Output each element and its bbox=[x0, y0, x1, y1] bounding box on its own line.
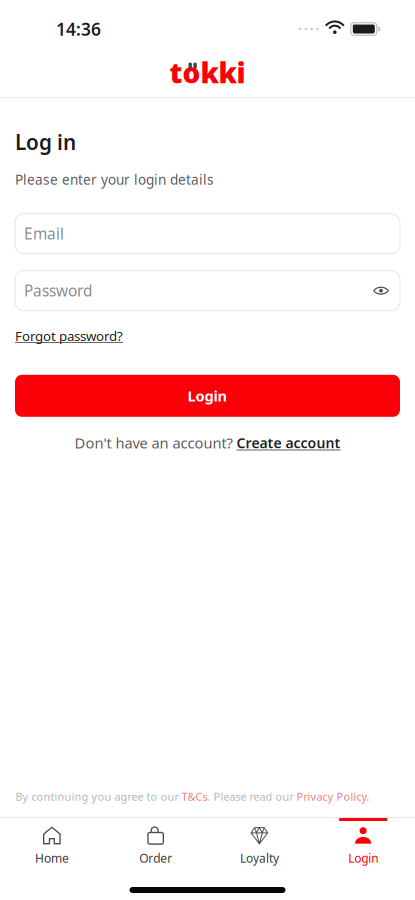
staticText: Forgot password? bbox=[15, 327, 123, 345]
staticText: Please enter your login details bbox=[15, 170, 214, 189]
button[interactable]: Order bbox=[104, 818, 208, 872]
button[interactable]: Show password bbox=[370, 280, 392, 302]
staticText: Home bbox=[35, 850, 69, 866]
staticText: Login bbox=[348, 850, 378, 866]
button[interactable]: Password bbox=[15, 271, 400, 311]
button[interactable]: Create account bbox=[236, 433, 340, 452]
staticText: By continuing you agree to our bbox=[15, 789, 181, 804]
button[interactable]: Login bbox=[15, 375, 400, 417]
staticText: Email bbox=[24, 223, 64, 244]
button[interactable]: Home bbox=[0, 818, 104, 872]
button[interactable]: Email bbox=[15, 214, 400, 254]
staticText: T&Cs bbox=[181, 789, 207, 804]
staticText: Password bbox=[24, 280, 92, 301]
staticText: . Please read our bbox=[207, 789, 296, 804]
staticText: Don't have an account? bbox=[74, 433, 236, 453]
staticText: Log in bbox=[15, 128, 76, 156]
button[interactable]: Login bbox=[311, 818, 415, 872]
staticText: 14:36 bbox=[56, 17, 101, 41]
button[interactable]: Privacy Policy. bbox=[296, 789, 369, 804]
button[interactable]: Forgot password? bbox=[15, 327, 123, 345]
button[interactable]: Loyalty bbox=[207, 818, 311, 872]
staticText: Order bbox=[139, 850, 172, 866]
staticText: Create account bbox=[236, 433, 340, 452]
staticText: Loyalty bbox=[240, 850, 279, 866]
staticText: Privacy Policy. bbox=[296, 789, 369, 804]
staticText: Login bbox=[187, 386, 227, 406]
button[interactable]: T&Cs bbox=[181, 789, 207, 804]
staticText: tokki bbox=[169, 53, 245, 91]
